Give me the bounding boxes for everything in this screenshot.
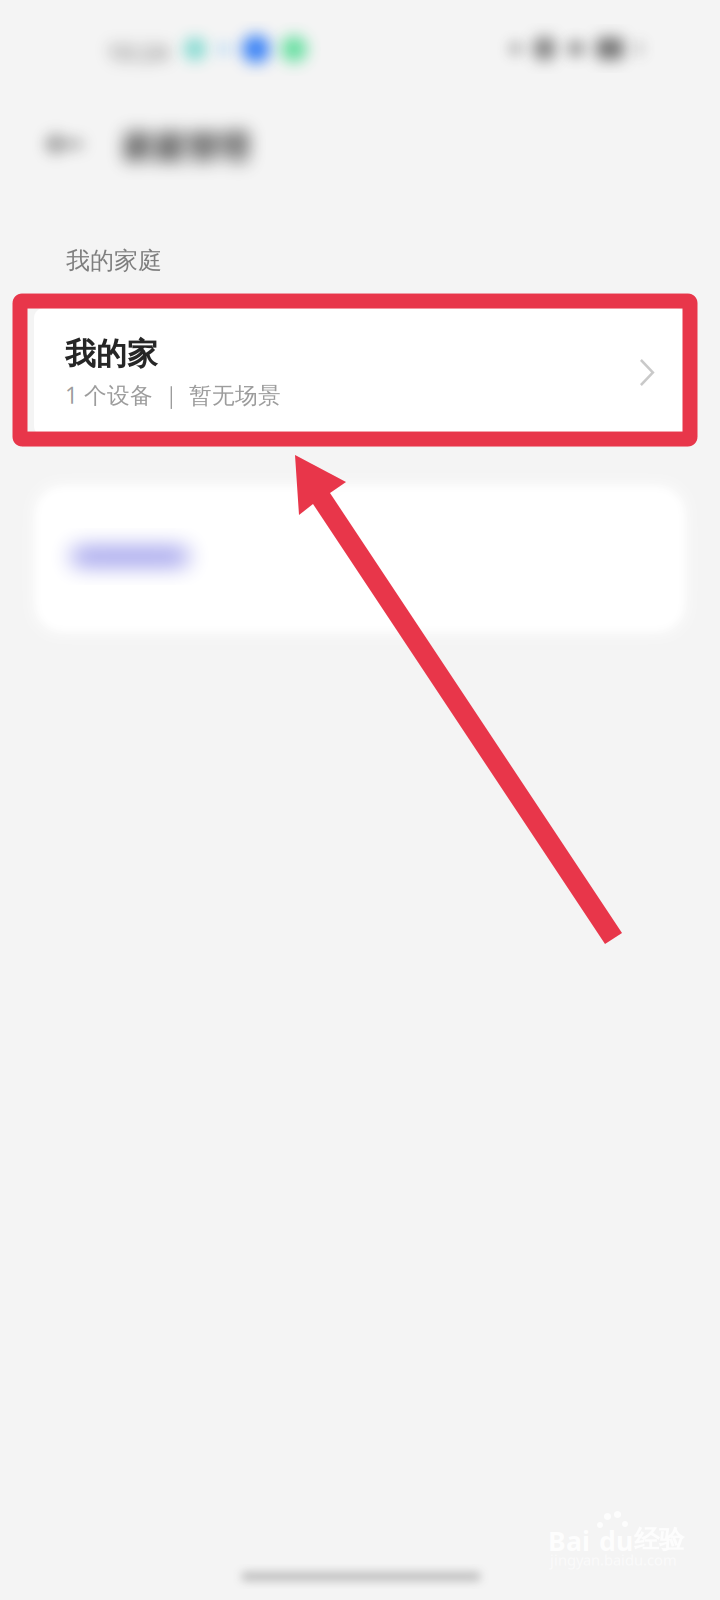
- button[interactable]: 我的家: [34, 308, 686, 436]
- staticText: du: [599, 1523, 633, 1558]
- staticText: 我的家: [65, 335, 158, 373]
- button[interactable]: 返回: [20, 100, 108, 188]
- button[interactable]: 创建家庭: [35, 486, 685, 632]
- staticText: Bai: [548, 1523, 590, 1558]
- staticText: 经验: [634, 1524, 684, 1555]
- staticText: 我的家庭: [66, 246, 162, 275]
- staticText: 1 个设备 ｜ 暂无场景: [65, 380, 281, 410]
